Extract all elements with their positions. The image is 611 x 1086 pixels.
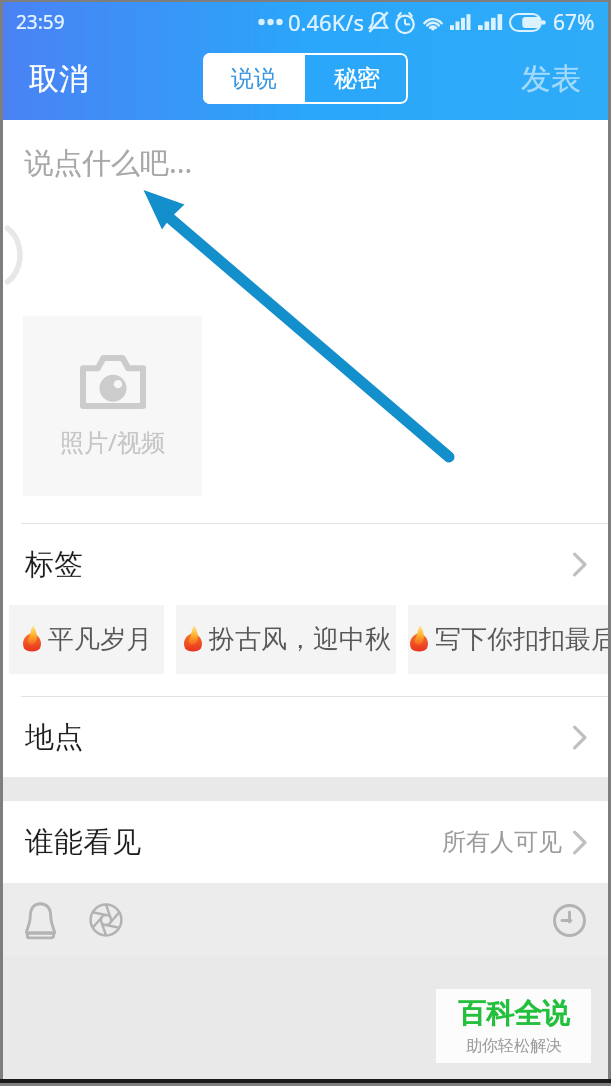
- button[interactable]: 写下你扣扣最后: [408, 605, 608, 674]
- button[interactable]: 发表: [501, 42, 608, 116]
- staticText: 所有人可见: [442, 827, 562, 857]
- button[interactable]: QQ friends: [17, 897, 63, 943]
- button[interactable]: Camera filters: [83, 897, 129, 943]
- staticText: 扮古风，迎中秋: [209, 623, 391, 656]
- button[interactable]: 平凡岁月: [9, 605, 164, 674]
- button[interactable]: Add photo or video: [23, 316, 202, 496]
- staticText: 标签: [25, 546, 83, 583]
- staticText: 百科全说: [458, 996, 570, 1031]
- staticText: 0.46K/s: [288, 7, 364, 37]
- staticText: 照片/视频: [60, 425, 165, 458]
- button[interactable]: 地点: [3, 697, 608, 777]
- staticText: 发表: [521, 60, 581, 98]
- staticText: 说点什么吧...: [24, 142, 193, 182]
- staticText: 秘密: [334, 64, 380, 93]
- staticText: 23:59: [16, 9, 65, 35]
- button[interactable]: Schedule post: [546, 897, 592, 943]
- staticText: 助你轻松解决: [466, 1036, 562, 1056]
- staticText: 取消: [29, 60, 89, 98]
- staticText: 谁能看见: [25, 824, 141, 861]
- button[interactable]: 取消: [3, 42, 109, 116]
- staticText: 67%: [553, 8, 595, 37]
- staticText: 说说: [231, 64, 277, 93]
- button[interactable]: 扮古风，迎中秋: [176, 605, 396, 674]
- button[interactable]: 标签: [3, 524, 608, 605]
- staticText: 写下你扣扣最后: [435, 623, 608, 656]
- staticText: 地点: [25, 719, 83, 756]
- button[interactable]: 说说: [203, 53, 305, 104]
- button[interactable]: 谁能看见: [3, 801, 608, 883]
- button[interactable]: 秘密: [305, 53, 408, 104]
- staticText: 平凡岁月: [48, 623, 152, 656]
